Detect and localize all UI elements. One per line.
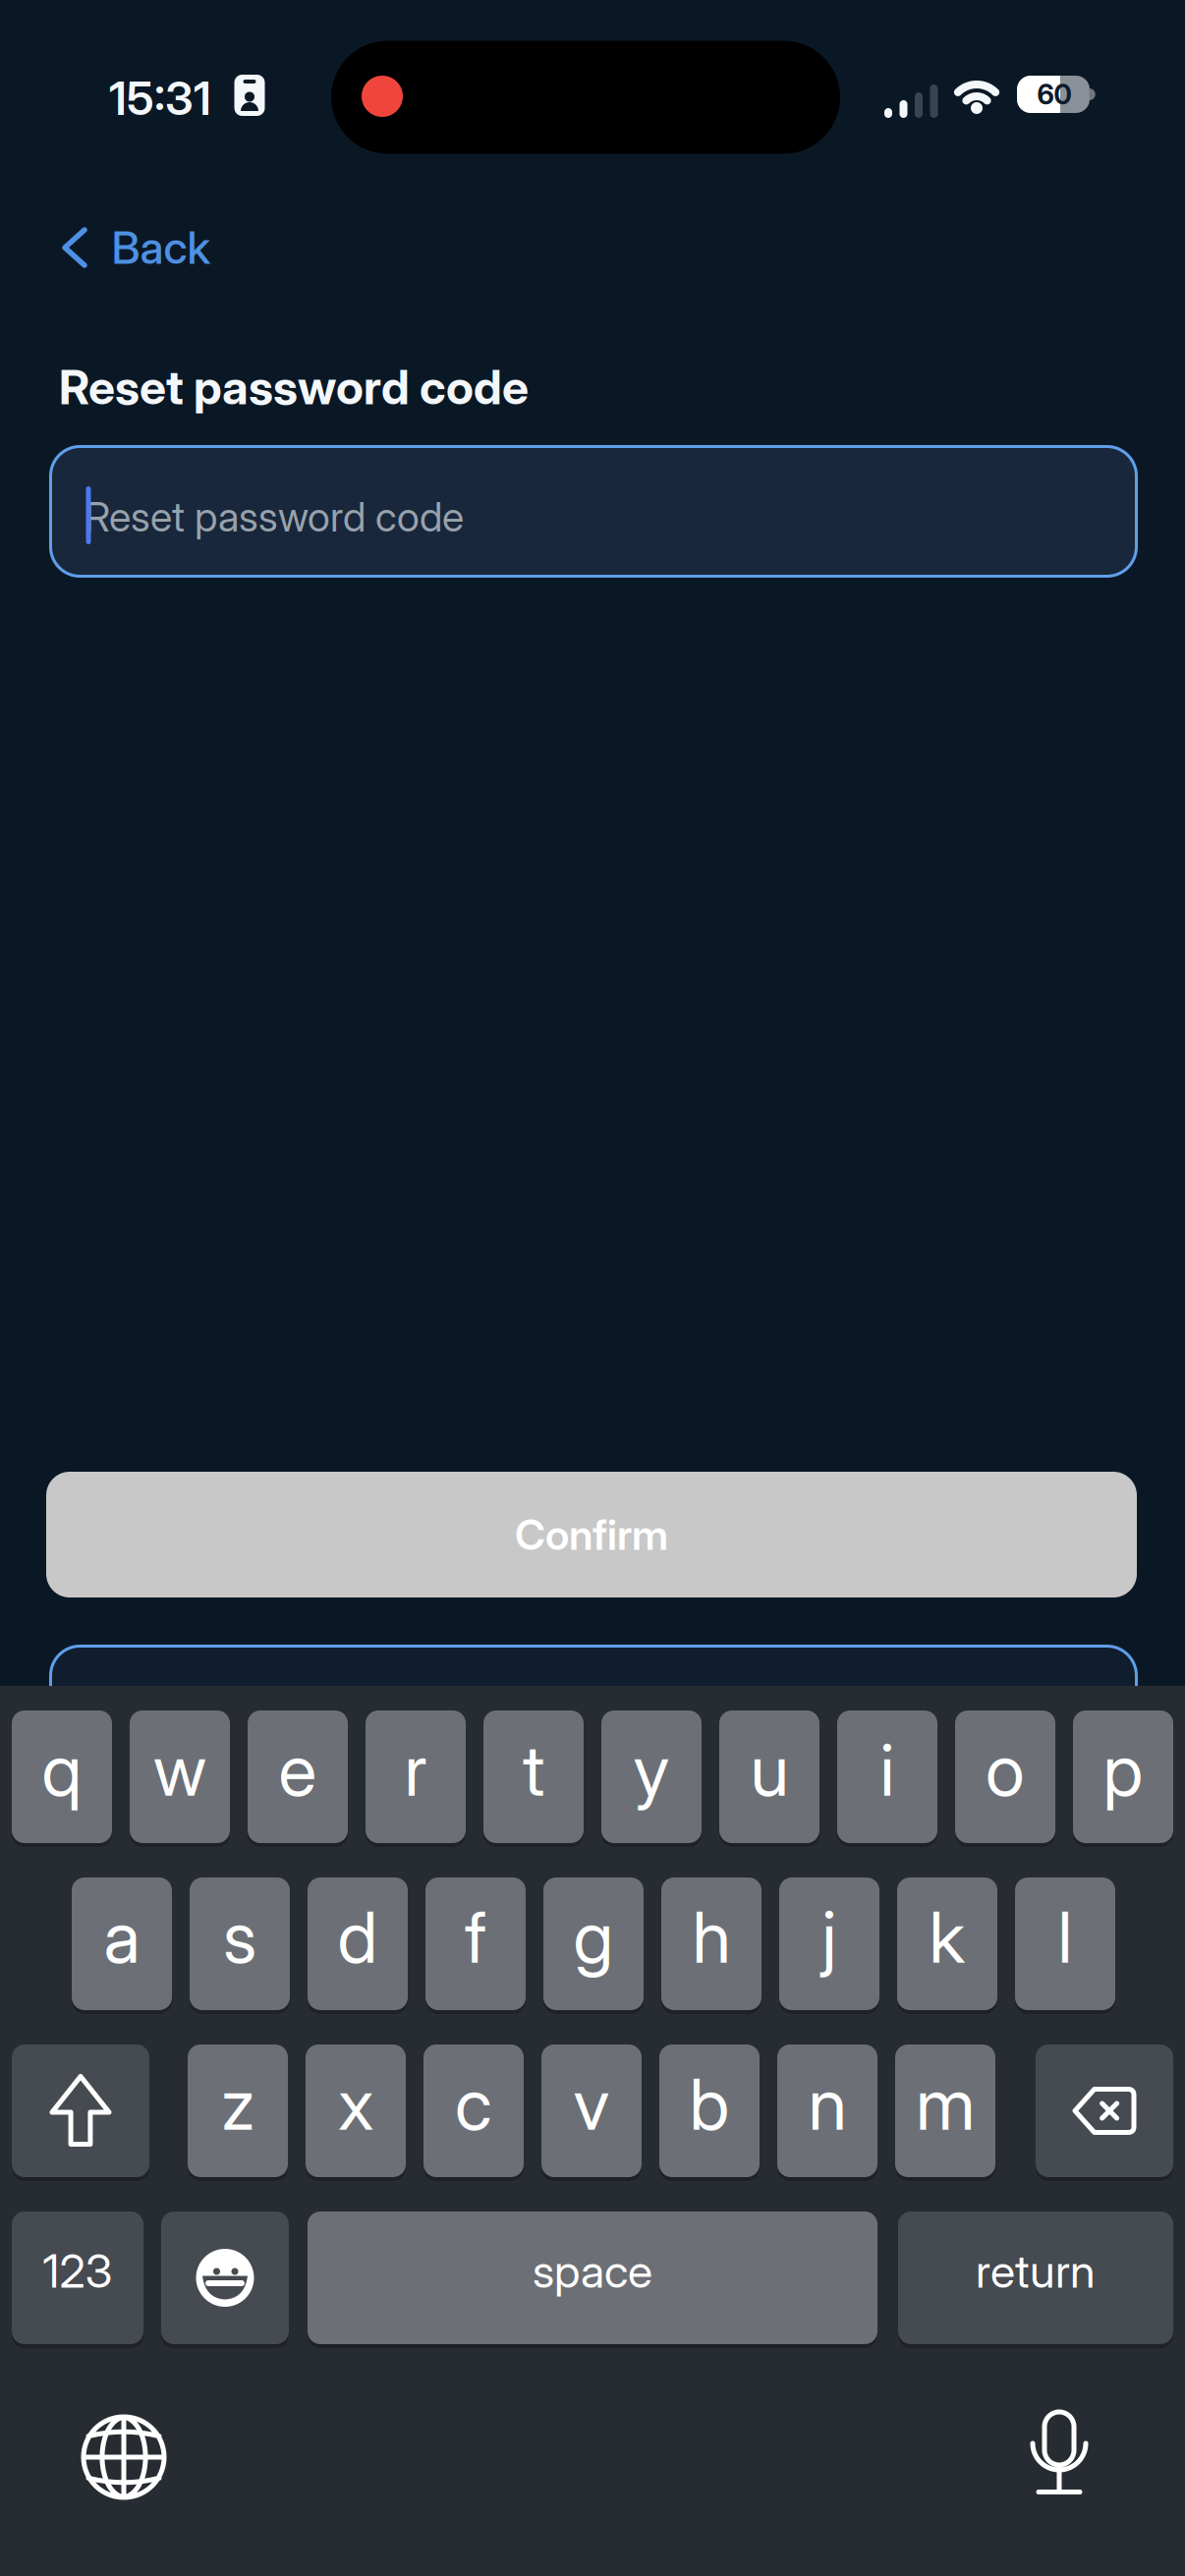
button[interactable]: Emoji [161,2212,289,2344]
button[interactable]: p [1073,1710,1173,1843]
staticText: f [465,1895,486,1979]
button[interactable]: Delete [1036,2044,1173,2177]
staticText: r [404,1728,427,1812]
staticText: k [929,1895,965,1979]
button[interactable]: o [955,1710,1055,1843]
staticText: e [279,1728,317,1812]
button[interactable]: t [483,1710,584,1843]
button[interactable]: u [719,1710,819,1843]
button[interactable]: l [1015,1877,1115,2010]
staticText: o [986,1728,1025,1812]
staticText: 60 [1037,78,1072,111]
button[interactable]: g [543,1877,644,2010]
button[interactable]: Confirm [46,1472,1137,1597]
button[interactable]: m [895,2044,995,2177]
button[interactable]: j [779,1877,879,2010]
button[interactable]: Text field [49,1645,1138,1777]
button[interactable]: b [659,2044,760,2177]
button[interactable]: space [308,2212,877,2344]
button[interactable]: return [898,2212,1173,2344]
staticText: h [692,1895,731,1979]
button[interactable]: v [541,2044,642,2177]
staticText: Confirm [515,1510,668,1559]
staticText: z [221,2062,254,2146]
staticText: b [689,2062,730,2146]
button[interactable]: y [601,1710,702,1843]
staticText: space [533,2244,652,2298]
button[interactable]: a [72,1877,172,2010]
staticText: return [976,2244,1096,2298]
staticText: x [338,2062,373,2146]
staticText: s [223,1895,256,1979]
button[interactable]: Back [0,177,226,318]
staticText: g [573,1895,614,1979]
staticText: v [573,2062,610,2146]
staticText: j [822,1895,837,1979]
staticText: l [1058,1895,1072,1979]
button[interactable]: q [12,1710,112,1843]
staticText: Back [112,221,211,274]
button[interactable]: d [308,1877,408,2010]
button[interactable]: 123 [12,2212,143,2344]
staticText: i [880,1728,895,1812]
staticText: n [808,2062,846,2146]
button[interactable]: Dictation [1028,2410,1091,2496]
staticText: p [1103,1728,1143,1812]
button[interactable]: c [423,2044,524,2177]
button[interactable]: x [306,2044,406,2177]
staticText: w [153,1728,206,1812]
staticText: y [633,1728,670,1812]
button[interactable]: w [130,1710,230,1843]
staticText: u [750,1728,789,1812]
button[interactable]: Reset password code [49,445,1138,578]
staticText: 123 [43,2244,113,2298]
staticText: c [455,2062,492,2146]
button[interactable]: k [897,1877,997,2010]
staticText: Reset password code [59,359,529,415]
staticText: a [104,1895,140,1979]
button[interactable]: n [777,2044,877,2177]
staticText: q [42,1728,82,1812]
button[interactable]: Shift [12,2044,149,2177]
staticText: m [916,2062,975,2146]
button[interactable]: r [366,1710,466,1843]
button[interactable]: Next keyboard [82,2415,166,2499]
button[interactable]: h [661,1877,762,2010]
staticText: d [338,1895,378,1979]
button[interactable]: f [425,1877,526,2010]
staticText: 15:31 [109,71,211,125]
staticText: Reset password code [85,493,464,541]
button[interactable]: e [248,1710,348,1843]
button[interactable]: z [188,2044,288,2177]
staticText: t [523,1728,544,1812]
button[interactable]: i [837,1710,937,1843]
button[interactable]: s [190,1877,290,2010]
